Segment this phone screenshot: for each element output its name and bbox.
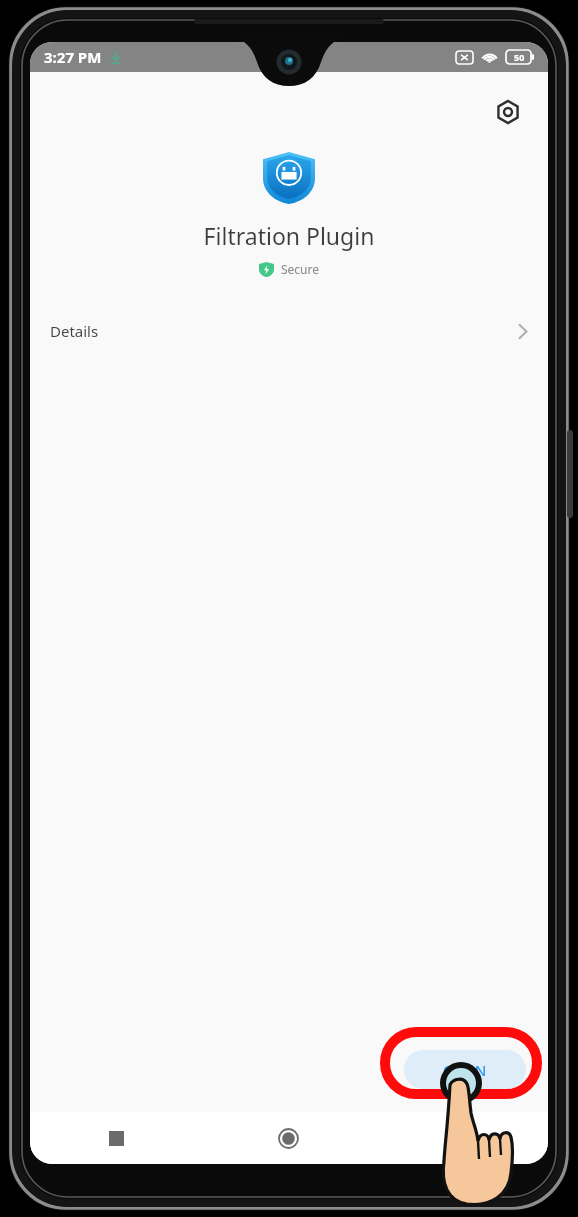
button[interactable]: Back — [375, 1112, 548, 1164]
staticText: Filtration Plugin — [30, 220, 548, 251]
staticText: Secure — [281, 261, 320, 277]
button[interactable]: Details — [30, 305, 548, 357]
staticText: Details — [50, 321, 99, 341]
staticText: 50 — [514, 51, 525, 63]
button[interactable]: OPEN — [404, 1050, 526, 1089]
staticText: 3:27 PM — [44, 47, 102, 67]
button[interactable]: Recents — [30, 1112, 202, 1164]
staticText: OPEN — [443, 1060, 488, 1080]
button[interactable]: Home — [202, 1112, 375, 1164]
button[interactable]: Settings — [486, 90, 530, 134]
